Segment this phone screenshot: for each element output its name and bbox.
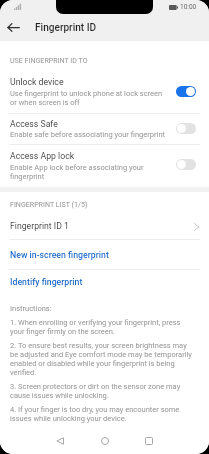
button[interactable]: Toggle off <box>176 159 196 170</box>
staticText: Access Safe <box>10 119 58 129</box>
button[interactable]: New in-screen fingerprint <box>0 242 209 266</box>
button[interactable]: Back <box>46 428 74 454</box>
button[interactable]: Identify fingerprint <box>0 271 209 295</box>
button[interactable]: Toggle off <box>176 123 196 134</box>
button[interactable]: Home <box>91 428 119 454</box>
staticText: Instructions: <box>10 304 52 313</box>
staticText: Identify fingerprint <box>10 277 83 287</box>
button[interactable]: Recents <box>135 428 163 454</box>
staticText: FINGERPRINT LIST (1/5) <box>10 200 88 208</box>
staticText: New in-screen fingerprint <box>10 250 109 260</box>
staticText: Access App lock <box>10 151 75 161</box>
button[interactable]: Back <box>0 14 27 41</box>
staticText: Fingerprint ID <box>35 22 97 34</box>
staticText: 1. When enrolling or verifying your fing… <box>10 318 194 336</box>
staticText: Enable App lock before associating your … <box>10 163 144 181</box>
staticText: 10:00 <box>180 3 197 11</box>
staticText: Unlock device <box>10 77 64 87</box>
staticText: Use fingerprint to unlock phone at lock … <box>10 89 163 107</box>
button[interactable]: Toggle on <box>176 86 196 97</box>
staticText: Enable safe before associating your fing… <box>10 130 165 139</box>
button[interactable]: Fingerprint ID 1 <box>0 212 209 240</box>
staticText: Fingerprint ID 1 <box>10 221 69 231</box>
staticText: 2. To ensure best results, your screen b… <box>10 341 194 377</box>
staticText: USE FINGERPRINT ID TO <box>10 56 88 64</box>
staticText: 4. If your finger is too dry, you may en… <box>10 405 194 423</box>
staticText: 3. Screen protectors or dirt on the sens… <box>10 382 194 400</box>
